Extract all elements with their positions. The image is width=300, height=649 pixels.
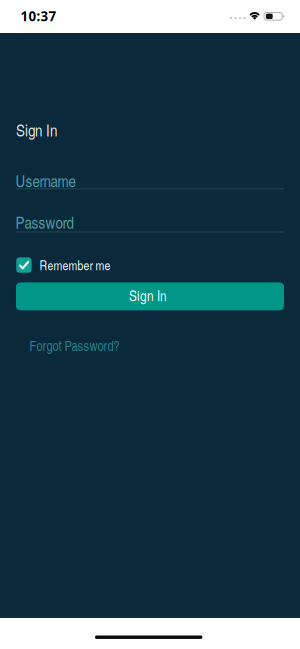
button[interactable]: Forgot Password? [30,336,120,355]
staticText: Remember me [40,256,111,274]
staticText: Sign In [16,119,57,141]
staticText: Sign In [129,285,167,305]
button[interactable]: Password [15,211,73,233]
button[interactable]: Remember me [16,256,111,274]
button[interactable]: Username [15,169,75,192]
staticText: Forgot Password? [30,336,120,355]
staticText: Username [15,169,75,192]
button[interactable]: Sign In [16,282,284,310]
staticText: 10:37 [20,7,56,25]
staticText: Password [15,211,73,233]
